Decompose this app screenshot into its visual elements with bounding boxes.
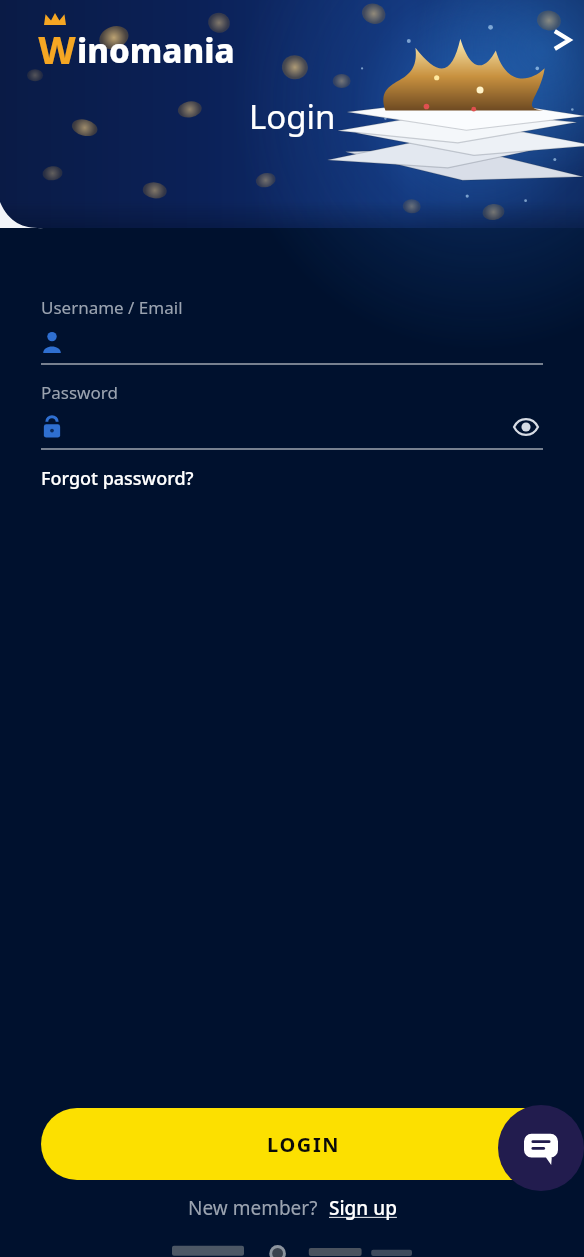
staticText: New member? xyxy=(188,1195,318,1221)
button[interactable]: LOGIN xyxy=(41,1108,567,1180)
staticText: Username / Email xyxy=(41,296,183,319)
button[interactable]: Show password xyxy=(509,410,543,444)
staticText: Login xyxy=(249,94,336,139)
button[interactable]: Username / Email xyxy=(41,296,543,365)
staticText: Sign up xyxy=(329,1195,397,1221)
staticText: Forgot password? xyxy=(41,466,194,491)
button[interactable]: Chat support xyxy=(498,1105,584,1191)
button[interactable]: Sign up xyxy=(329,1195,397,1221)
button[interactable]: Next xyxy=(536,16,584,64)
staticText: inomania xyxy=(77,28,235,73)
staticText: W xyxy=(38,23,77,75)
button[interactable]: Password xyxy=(41,381,543,450)
staticText: LOGIN xyxy=(267,1131,341,1158)
staticText: Password xyxy=(41,381,118,404)
button[interactable]: Forgot password? xyxy=(41,464,194,493)
